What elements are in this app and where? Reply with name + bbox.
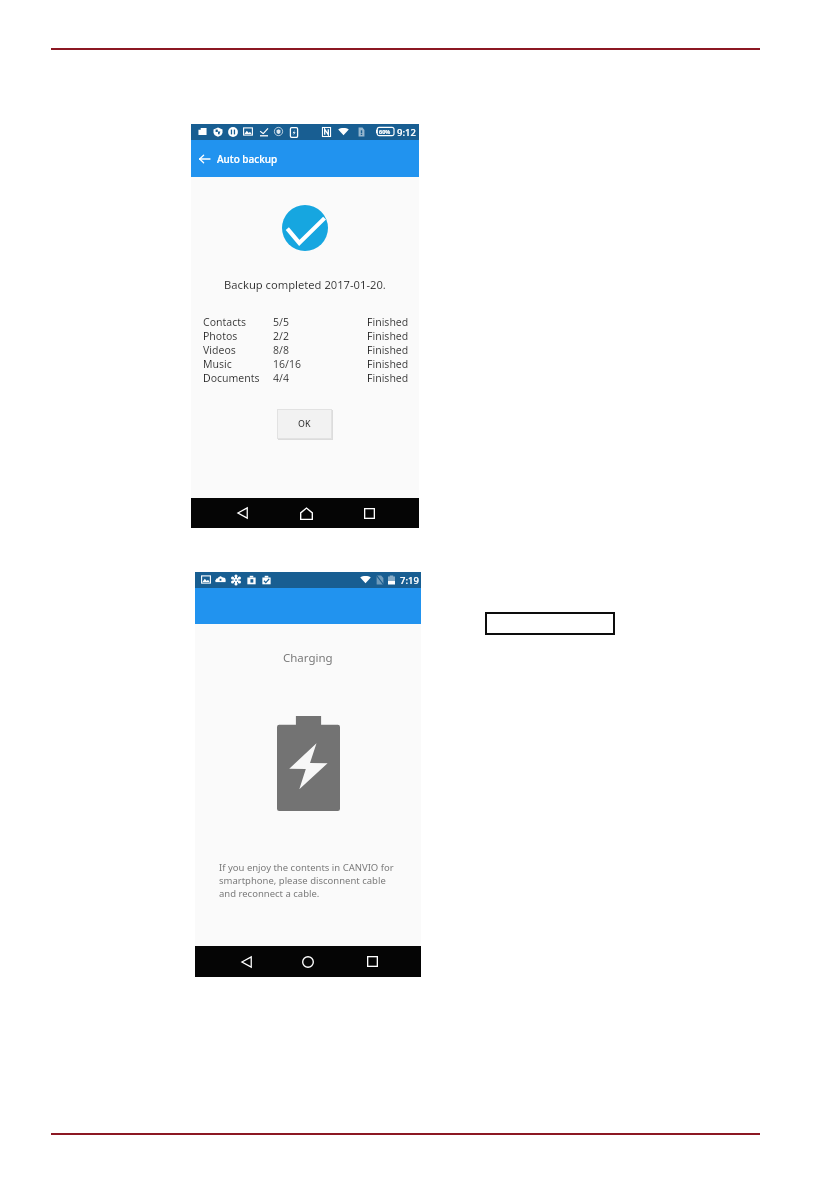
staticText: 8/8 bbox=[273, 343, 367, 357]
staticText: Contacts bbox=[203, 315, 273, 329]
staticText: Videos bbox=[203, 343, 273, 357]
button[interactable]: Home bbox=[292, 946, 324, 977]
staticText: 4/4 bbox=[273, 371, 367, 385]
staticText: Charging bbox=[283, 650, 333, 666]
staticText: Documents bbox=[203, 371, 273, 385]
button[interactable]: Back bbox=[226, 498, 258, 528]
staticText: Finished bbox=[367, 329, 409, 343]
staticText: 5/5 bbox=[273, 315, 367, 329]
button[interactable]: OK bbox=[277, 409, 332, 439]
staticText: 9:12 bbox=[397, 126, 416, 139]
staticText: Backup completed 2017-01-20. bbox=[224, 277, 386, 292]
button[interactable]: Recents bbox=[353, 498, 385, 528]
button[interactable]: Back bbox=[191, 140, 217, 177]
staticText: Finished bbox=[367, 371, 409, 385]
staticText: 60% bbox=[379, 128, 391, 135]
staticText: OK bbox=[298, 418, 311, 430]
button[interactable]: Back bbox=[230, 946, 262, 977]
button[interactable]: Recents bbox=[356, 946, 388, 977]
button[interactable]: Home bbox=[290, 498, 322, 528]
staticText: Finished bbox=[367, 343, 409, 357]
staticText: Finished bbox=[367, 315, 409, 329]
staticText: 7:19 bbox=[400, 574, 419, 587]
staticText: 16/16 bbox=[273, 357, 367, 371]
staticText: If you enjoy the contents in CANVIO for … bbox=[219, 861, 394, 900]
staticText: Music bbox=[203, 357, 273, 371]
staticText: Photos bbox=[203, 329, 273, 343]
staticText: Finished bbox=[367, 357, 409, 371]
staticText: 2/2 bbox=[273, 329, 367, 343]
staticText: Auto backup bbox=[217, 152, 278, 166]
